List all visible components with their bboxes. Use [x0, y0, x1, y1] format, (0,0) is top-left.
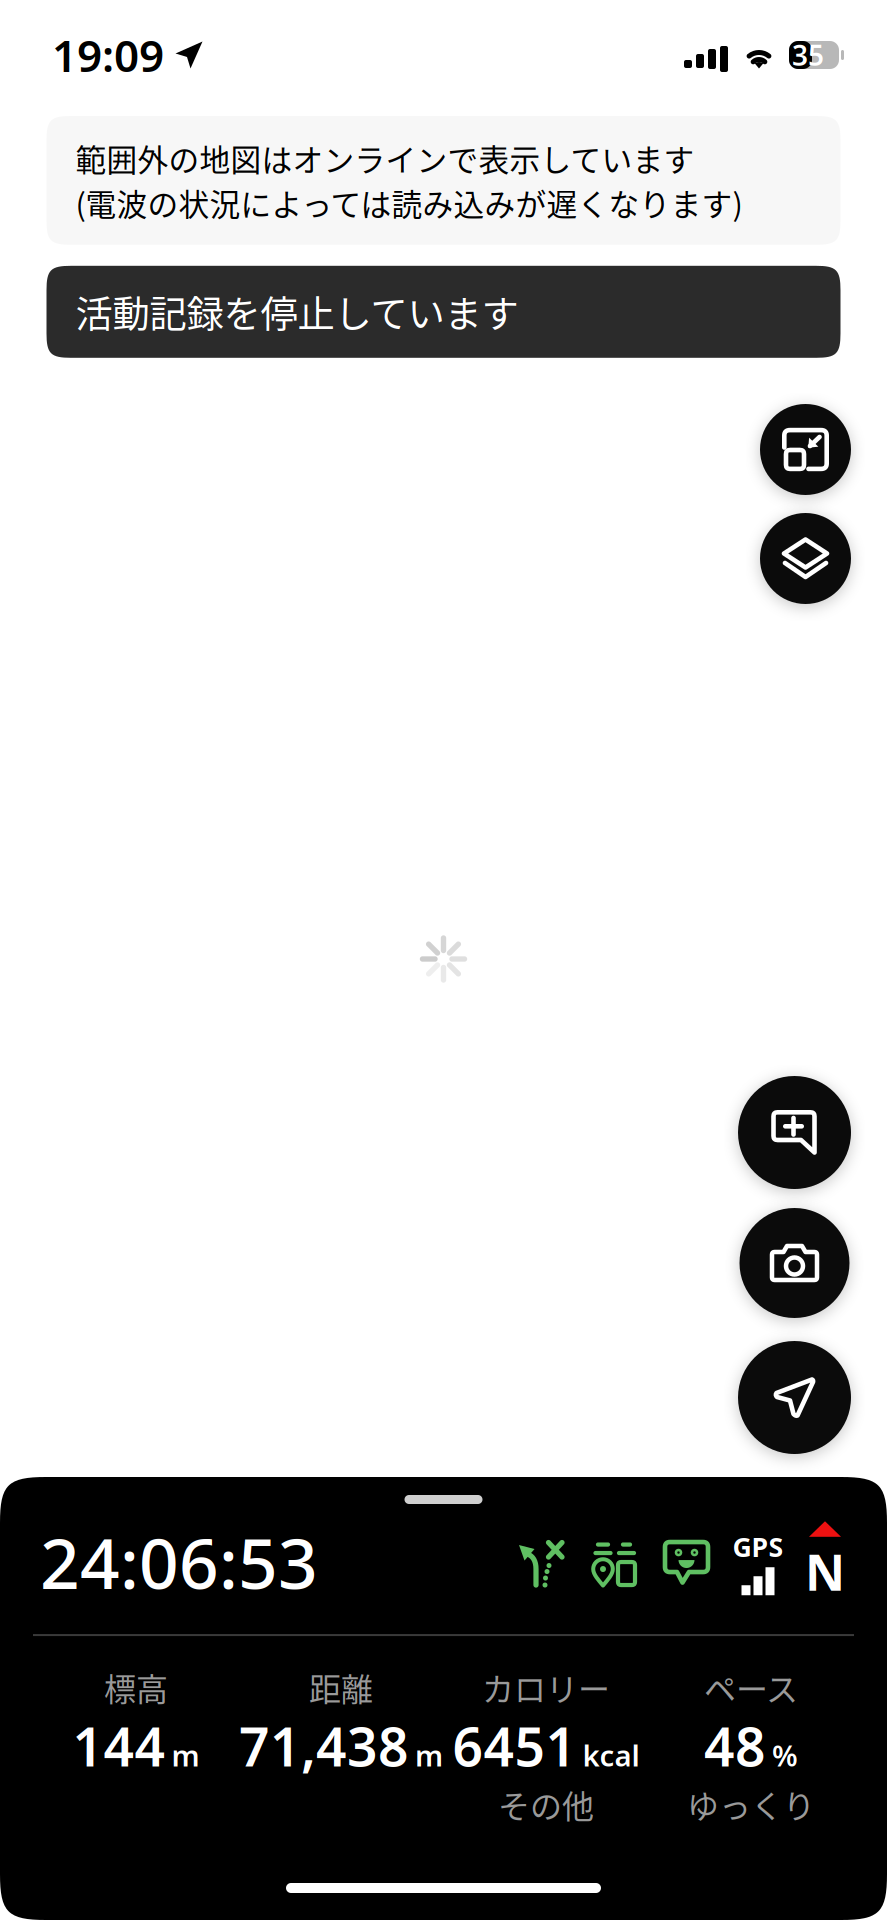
button[interactable]: Recenter — [738, 1341, 851, 1454]
staticText: N — [805, 1539, 845, 1604]
staticText: m — [415, 1736, 443, 1775]
button[interactable]: Add note — [738, 1076, 851, 1189]
staticText: 24:06:53 — [40, 1516, 318, 1608]
staticText: 範囲外の地図はオンラインで表示しています — [75, 136, 694, 180]
staticText: カロリー — [482, 1664, 610, 1710]
staticText: ゆっくり — [687, 1781, 815, 1827]
staticText: (電波の状況によっては読み込みが遅くなります) — [75, 180, 742, 225]
staticText: 19:09 — [52, 26, 164, 84]
staticText: 48 — [704, 1710, 766, 1781]
staticText: 標高 — [104, 1664, 168, 1710]
staticText: 35 — [792, 36, 824, 74]
staticText: 6451 — [452, 1710, 576, 1781]
button[interactable]: Camera — [739, 1208, 849, 1318]
staticText: % — [772, 1736, 798, 1775]
staticText: GPS — [732, 1529, 783, 1564]
staticText: 144 — [72, 1710, 165, 1781]
staticText: 距離 — [309, 1664, 373, 1710]
staticText: その他 — [498, 1781, 594, 1827]
button[interactable]: Collapse — [760, 404, 851, 495]
staticText: 活動記録を停止しています — [75, 285, 518, 339]
staticText: 71,438 — [239, 1710, 409, 1781]
staticText: m — [171, 1736, 199, 1775]
button[interactable]: Map layers — [760, 513, 851, 604]
staticText: ペース — [704, 1664, 798, 1710]
staticText: kcal — [582, 1736, 639, 1775]
